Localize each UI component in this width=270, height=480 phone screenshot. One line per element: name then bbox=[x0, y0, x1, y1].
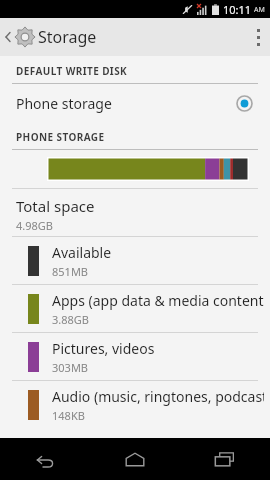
staticText: AM bbox=[254, 5, 265, 15]
button[interactable]: Phone storage bbox=[0, 84, 270, 122]
staticText: Available bbox=[52, 243, 112, 262]
staticText: PHONE STORAGE bbox=[16, 130, 105, 144]
button[interactable]: Total space bbox=[0, 189, 270, 236]
staticText: Audio (music, ringtones, podcasts) bbox=[52, 387, 264, 406]
button[interactable]: Available bbox=[0, 237, 270, 284]
button[interactable]: Back bbox=[0, 438, 90, 480]
staticText: Phone storage bbox=[16, 94, 112, 113]
button[interactable]: Home bbox=[90, 438, 180, 480]
staticText: 10:11 bbox=[223, 2, 252, 17]
staticText: DEFAULT WRITE DISK bbox=[16, 64, 128, 78]
button[interactable]: Recent apps bbox=[180, 438, 270, 480]
button[interactable]: Back to Settings bbox=[2, 21, 39, 53]
staticText: 303MB bbox=[52, 360, 89, 375]
staticText: Storage bbox=[38, 26, 97, 48]
staticText: 4.98GB bbox=[16, 218, 53, 233]
staticText: Apps (app data & media content) bbox=[52, 291, 264, 310]
staticText: 3.88GB bbox=[52, 312, 89, 327]
button[interactable]: More options bbox=[247, 23, 270, 52]
button[interactable]: Pictures, videos bbox=[0, 333, 270, 380]
staticText: 148KB bbox=[52, 408, 85, 423]
staticText: 851MB bbox=[52, 264, 89, 279]
staticText: Total space bbox=[16, 196, 95, 216]
button[interactable]: Apps (app data & media content) bbox=[0, 285, 270, 332]
button[interactable]: Audio (music, ringtones, podcasts) bbox=[0, 381, 270, 428]
staticText: Pictures, videos bbox=[52, 339, 155, 358]
